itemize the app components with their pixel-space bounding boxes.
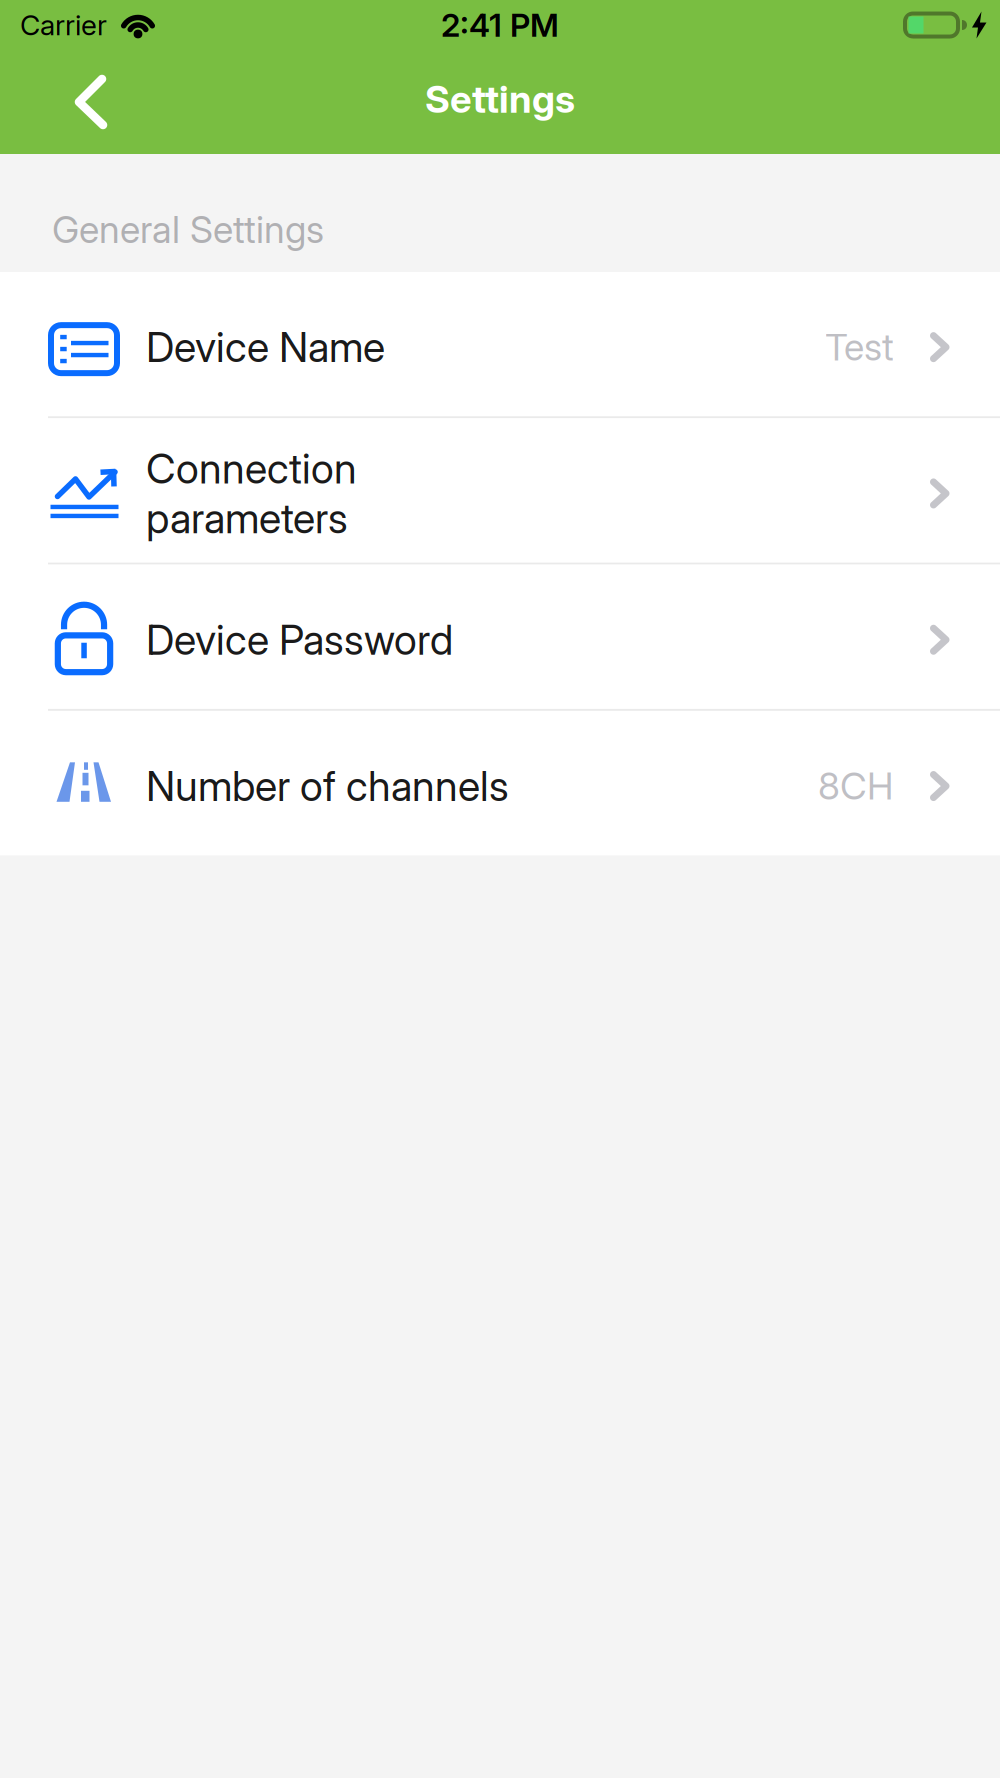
button[interactable]: Device Password [0,565,1000,709]
button[interactable]: Connection parameters [0,418,1000,563]
staticText: General Settings [52,207,324,252]
staticText: Device Password [146,615,453,664]
staticText: Device Name [146,322,385,372]
staticText: Number of channels [146,761,509,811]
staticText: 2:41 PM [441,6,559,44]
staticText: Test [825,325,894,370]
staticText: 8CH [818,764,894,808]
button[interactable]: Device Name [0,272,1000,416]
button[interactable]: Back [0,76,136,127]
staticText: Settings [425,76,575,122]
staticText: Carrier [20,8,107,42]
button[interactable]: Number of channels [0,711,1000,855]
staticText: Connection parameters [146,444,357,543]
